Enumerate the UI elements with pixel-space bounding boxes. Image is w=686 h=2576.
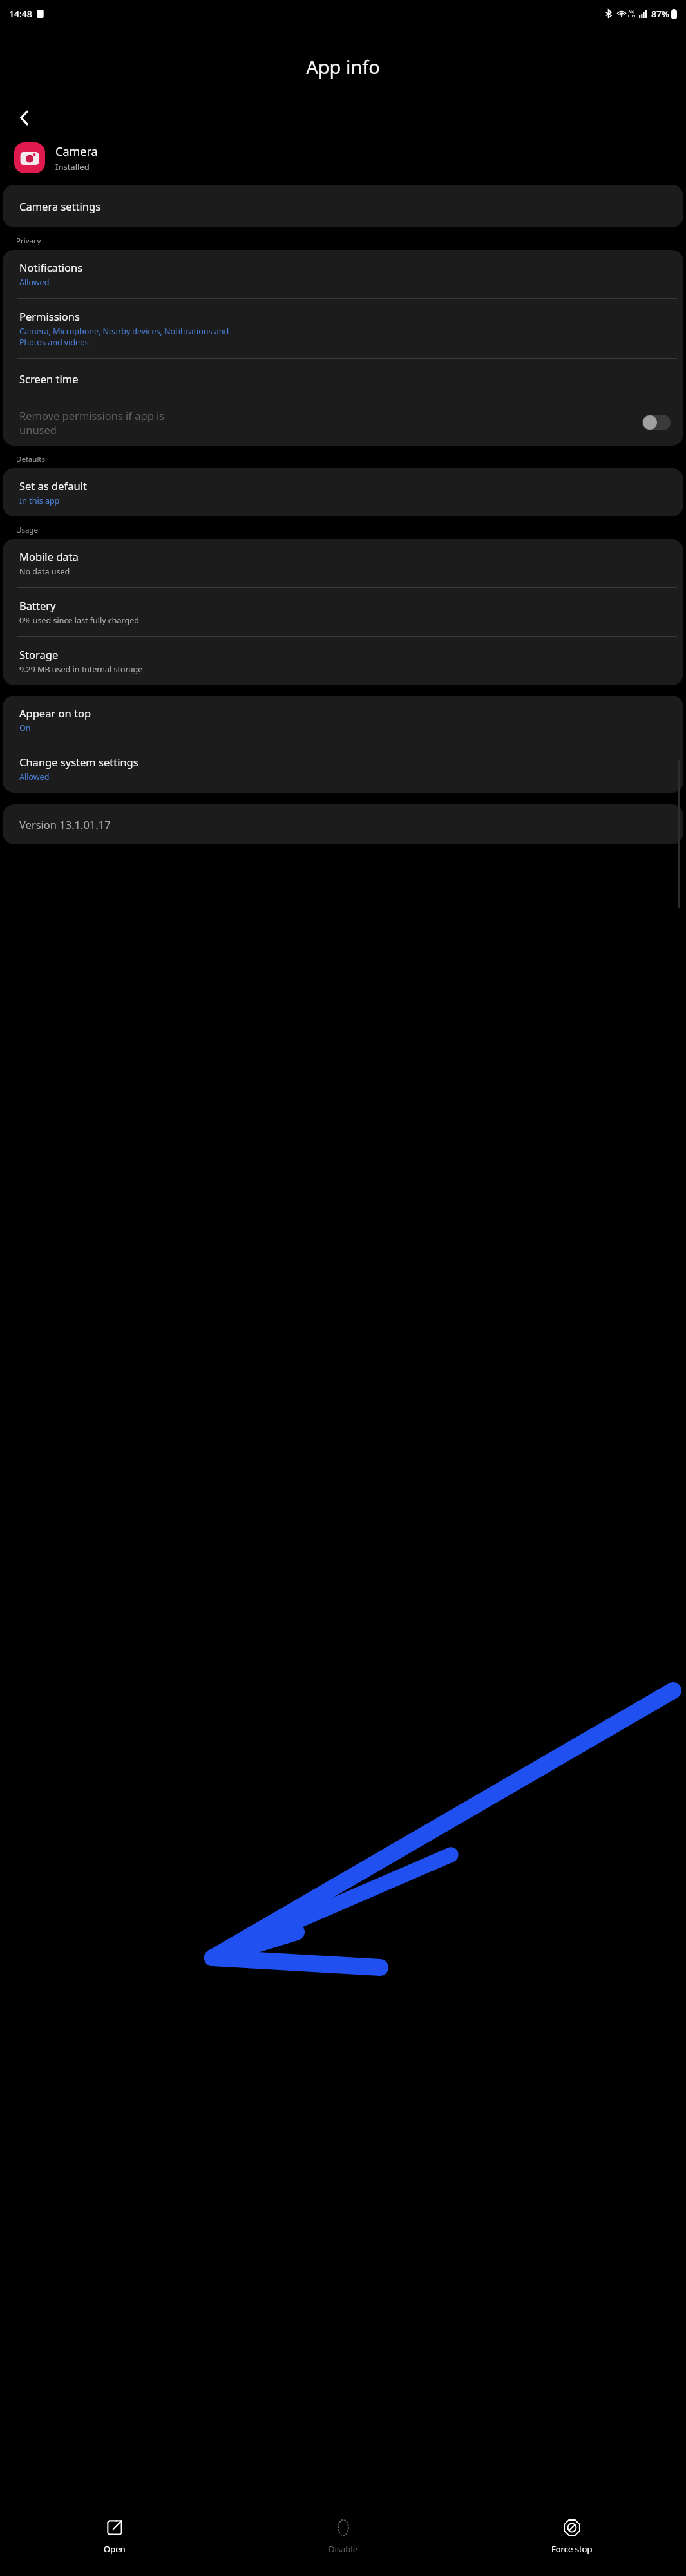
staticText: Force stop (551, 2543, 593, 2555)
button[interactable]: Change system settings (3, 744, 683, 793)
staticText: 14:48 (9, 8, 32, 20)
staticText: On (19, 723, 31, 734)
button[interactable]: Notifications (3, 250, 683, 298)
staticText: Notifications (19, 260, 83, 274)
staticText: Allowed (19, 277, 50, 288)
staticText: Battery (19, 598, 56, 612)
staticText: Vo) (629, 9, 635, 14)
staticText: Installed (55, 161, 90, 173)
staticText: No data used (19, 566, 70, 577)
button[interactable]: Storage (3, 637, 683, 685)
button[interactable]: Remove permissions toggle (642, 415, 671, 430)
staticText: 87% (651, 8, 669, 20)
staticText: Permissions (19, 309, 80, 323)
button[interactable]: Force stop (457, 2501, 686, 2572)
staticText: Camera (55, 144, 98, 160)
staticText: Set as default (19, 478, 87, 493)
staticText: Remove permissions if app is unused (19, 408, 165, 437)
button[interactable]: Screen time (3, 359, 683, 399)
staticText: Mobile data (19, 549, 79, 563)
staticText: Camera settings (19, 199, 101, 213)
staticText: Open (104, 2543, 126, 2555)
staticText: Camera, Microphone, Nearby devices, Noti… (19, 326, 229, 348)
staticText: Version 13.1.01.17 (19, 817, 111, 831)
staticText: Screen time (19, 372, 79, 386)
button[interactable]: Permissions (3, 299, 683, 358)
staticText: Usage (16, 525, 38, 535)
staticText: Storage (19, 647, 59, 661)
button[interactable]: Open (0, 2501, 229, 2572)
staticText: Appear on top (19, 706, 91, 720)
button[interactable]: Mobile data (3, 539, 683, 587)
staticText: 9.29 MB used in Internal storage (19, 664, 143, 675)
button[interactable]: Set as default (3, 468, 683, 516)
button[interactable]: Back (10, 104, 39, 132)
staticText: 0% used since last fully charged (19, 615, 140, 626)
staticText: Disable (329, 2543, 358, 2555)
button[interactable]: Disable (229, 2501, 457, 2572)
staticText: Defaults (16, 454, 46, 464)
button[interactable]: Camera settings (3, 185, 683, 227)
staticText: LTE1 (628, 14, 636, 18)
staticText: Allowed (19, 772, 50, 782)
button[interactable]: Camera (0, 142, 686, 173)
button[interactable]: Battery (3, 588, 683, 636)
button[interactable]: Remove permissions if app is unused (3, 399, 683, 446)
staticText: In this app (19, 495, 60, 506)
button[interactable]: Appear on top (3, 696, 683, 744)
staticText: Privacy (16, 236, 41, 246)
staticText: App info (0, 54, 686, 79)
staticText: Change system settings (19, 755, 138, 769)
button[interactable]: Version 13.1.01.17 (3, 804, 683, 844)
